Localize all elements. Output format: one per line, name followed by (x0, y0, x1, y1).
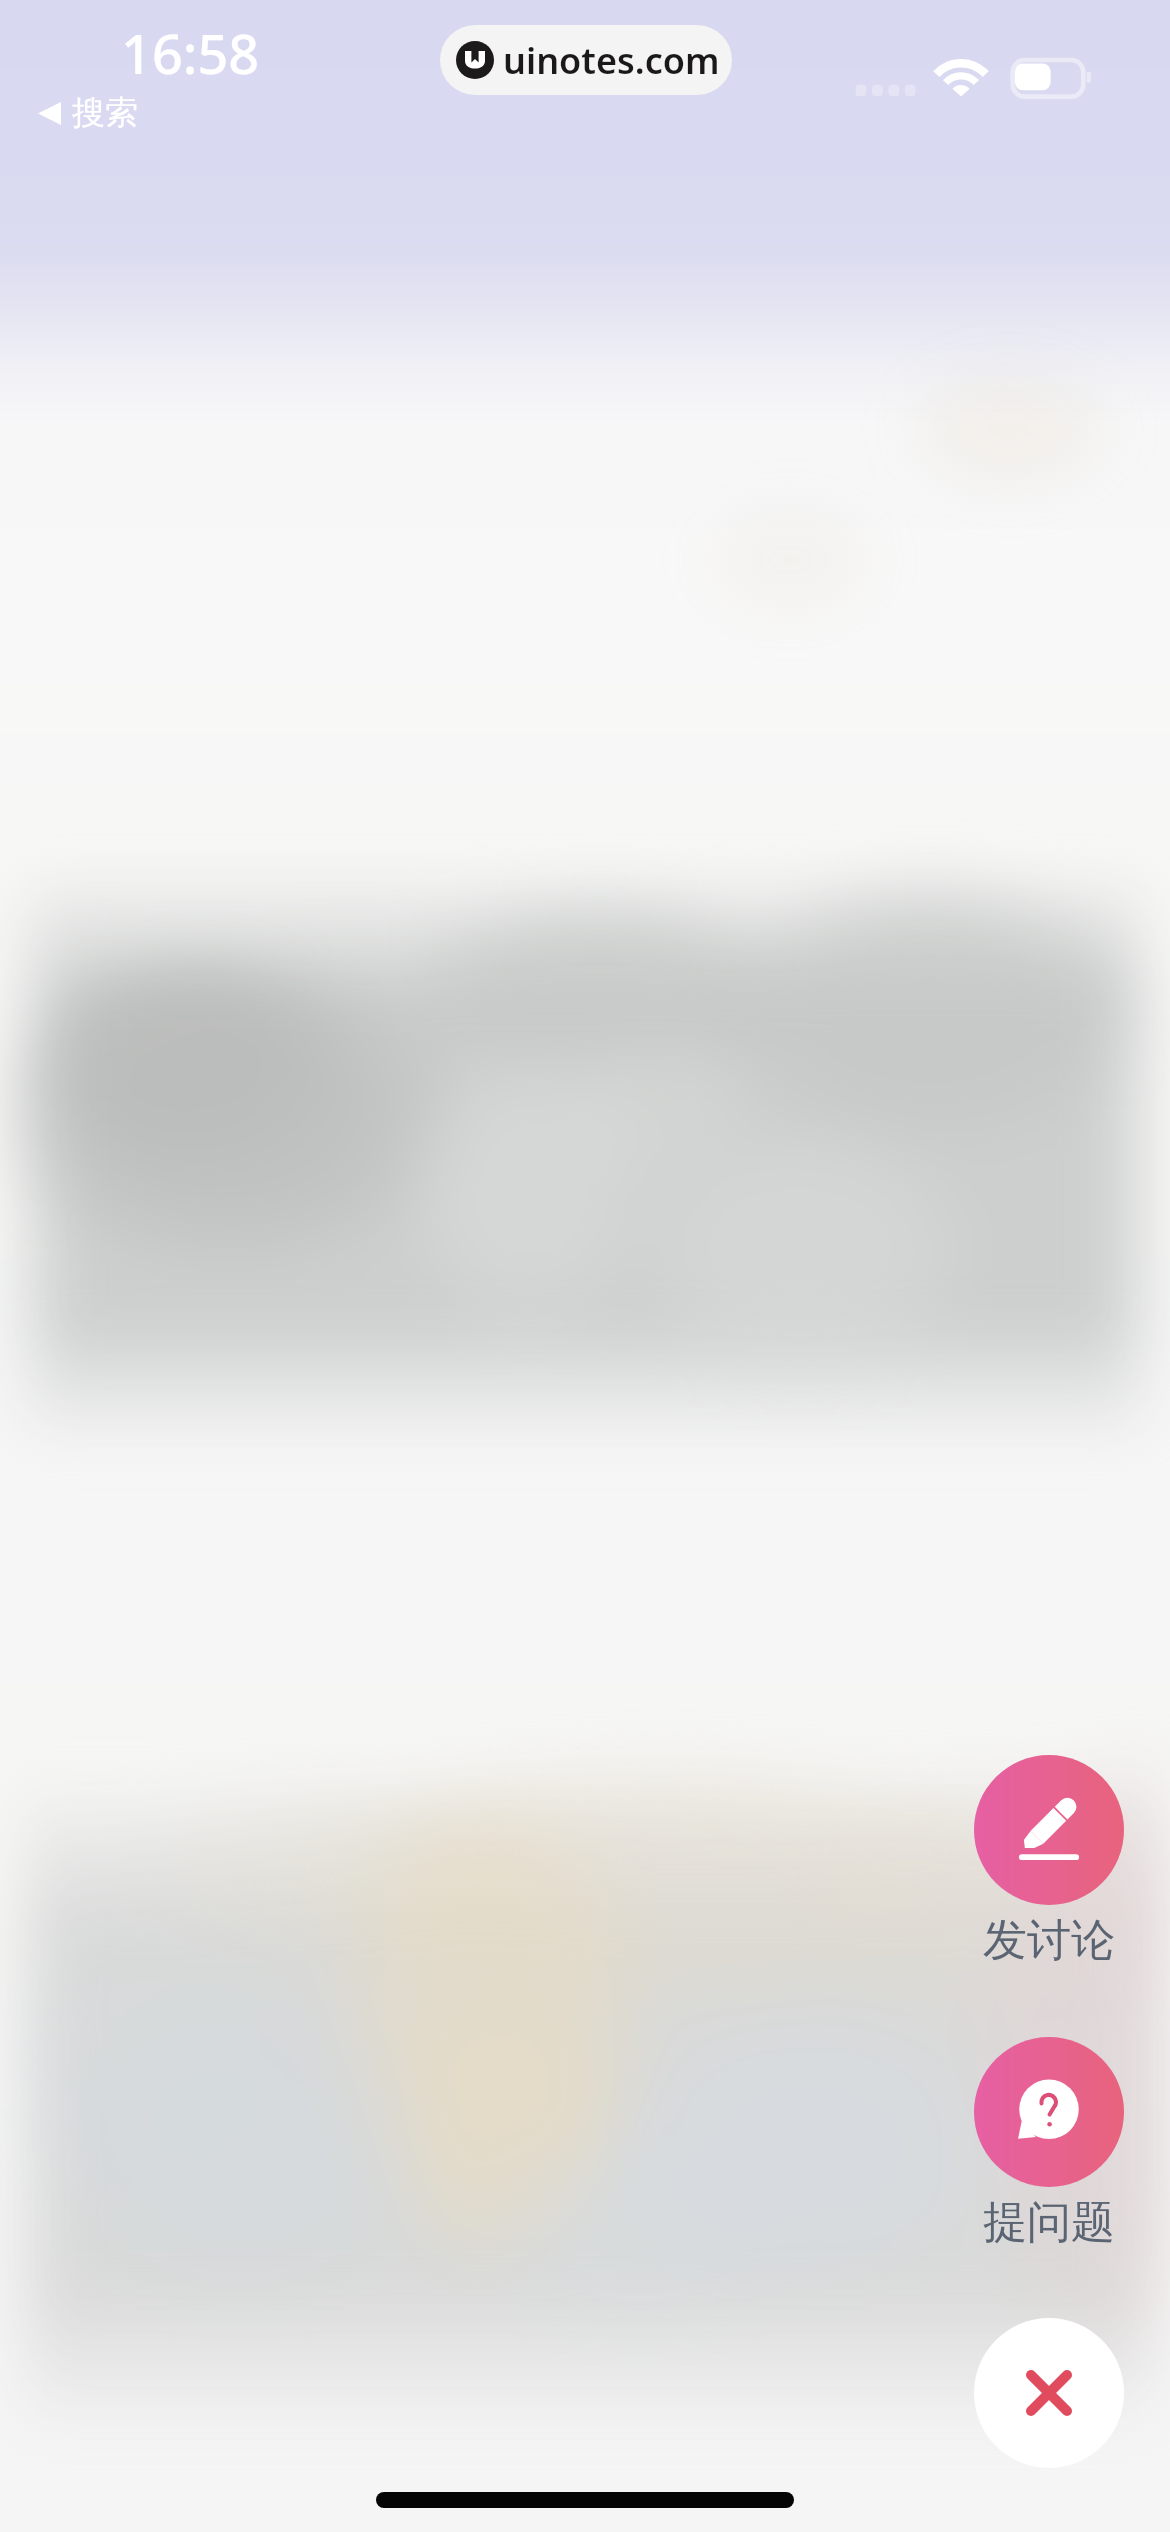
staticText: 搜索 (72, 92, 138, 134)
staticText: uinotes.com (503, 36, 720, 85)
other: 发讨论 (974, 1755, 1124, 1905)
staticText: 16:58 (121, 16, 260, 90)
other: 提问题 (974, 2037, 1124, 2187)
button[interactable]: 关闭 (974, 2318, 1124, 2468)
button[interactable]: 提问题 (974, 2037, 1124, 2250)
staticText: 提问题 (983, 2195, 1115, 2250)
button[interactable]: 搜索 (34, 90, 138, 136)
button[interactable]: uinotes.com (440, 25, 732, 95)
button[interactable]: 发讨论 (974, 1755, 1124, 1968)
staticText: 发讨论 (983, 1913, 1115, 1968)
